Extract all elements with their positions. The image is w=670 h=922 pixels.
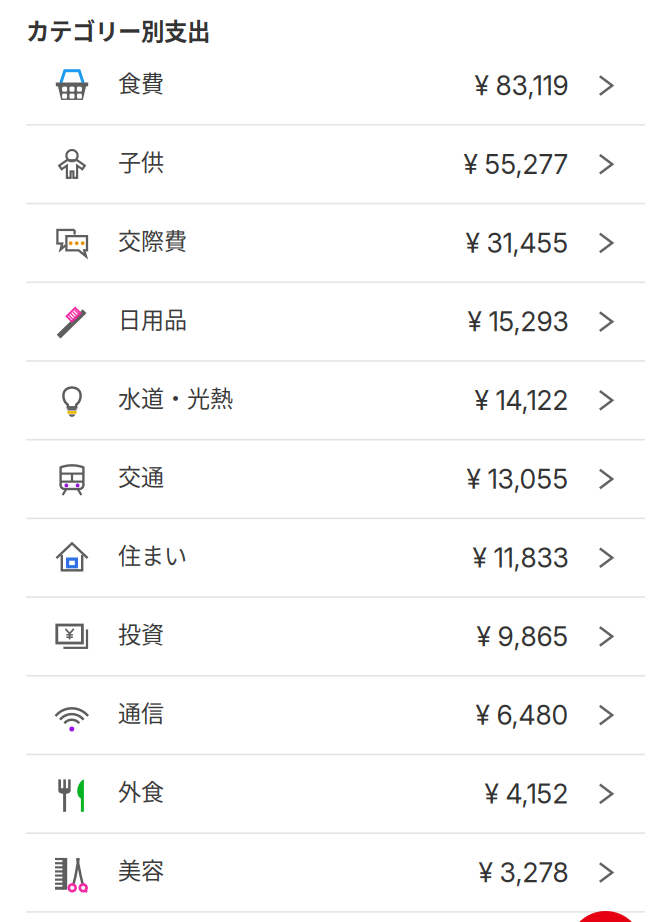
button[interactable]: 交際費 (0, 204, 670, 283)
staticText: 食費 (118, 65, 164, 99)
button[interactable]: Add expense (569, 911, 643, 922)
staticText: ¥ 4,152 (484, 778, 568, 810)
staticText: 投資 (118, 616, 164, 650)
staticText: 外食 (118, 774, 164, 807)
staticText: ¥ 31,455 (465, 227, 568, 259)
button[interactable]: 子供 (0, 126, 670, 204)
staticText: 美容 (118, 852, 164, 886)
staticText: ¥ 15,293 (467, 305, 568, 338)
button[interactable]: 日用品 (0, 283, 670, 362)
staticText: ¥ 13,055 (466, 463, 568, 495)
button[interactable]: 食費 (0, 47, 670, 126)
staticText: ¥ 11,833 (472, 542, 568, 574)
staticText: 子供 (118, 144, 164, 177)
staticText: 水道・光熱 (118, 380, 233, 413)
staticText: 通信 (118, 695, 164, 728)
button[interactable]: 交通 (0, 440, 670, 519)
staticText: ¥ 14,122 (474, 384, 568, 416)
button[interactable]: 投資 (0, 598, 670, 677)
staticText: カテゴリー別支出 (26, 13, 210, 47)
staticText: 交際費 (118, 223, 187, 256)
staticText: ¥ 9,865 (476, 620, 568, 653)
staticText: ¥ 3,278 (478, 856, 568, 889)
staticText: ¥ 83,119 (474, 69, 568, 102)
button[interactable]: 水道・光熱 (0, 362, 670, 440)
staticText: 交通 (118, 459, 164, 492)
button[interactable]: 外食 (0, 755, 670, 834)
staticText: 日用品 (118, 301, 187, 335)
button[interactable]: 住まい (0, 519, 670, 598)
button[interactable]: 美容 (0, 834, 670, 913)
staticText: ¥ 6,480 (475, 699, 568, 731)
staticText: 住まい (118, 537, 187, 571)
button[interactable]: 通信 (0, 677, 670, 755)
staticText: ¥ 55,277 (463, 148, 568, 180)
